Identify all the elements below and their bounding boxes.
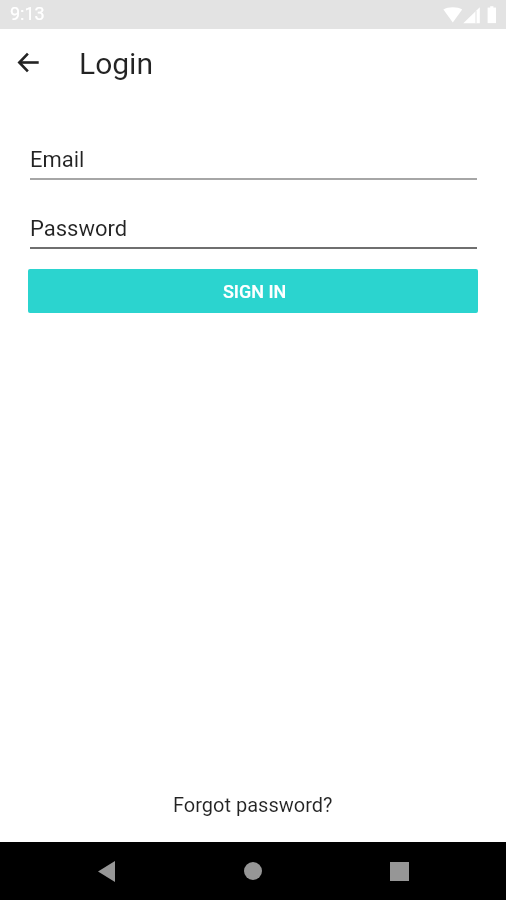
staticText: Email — [30, 147, 85, 173]
button[interactable]: Home — [233, 851, 273, 891]
staticText: 9:13 — [10, 3, 45, 24]
button[interactable]: Recents — [379, 851, 419, 891]
staticText: Login — [79, 46, 153, 81]
button[interactable]: Email — [29, 140, 478, 180]
button[interactable]: Back — [8, 42, 48, 82]
staticText: Password — [30, 216, 128, 242]
button[interactable]: Back — [86, 851, 126, 891]
button[interactable]: SIGN IN — [28, 269, 478, 313]
button[interactable]: Password — [29, 209, 478, 249]
staticText: Forgot password? — [173, 793, 333, 816]
staticText: SIGN IN — [223, 281, 287, 302]
button[interactable]: Forgot password? — [161, 787, 345, 822]
